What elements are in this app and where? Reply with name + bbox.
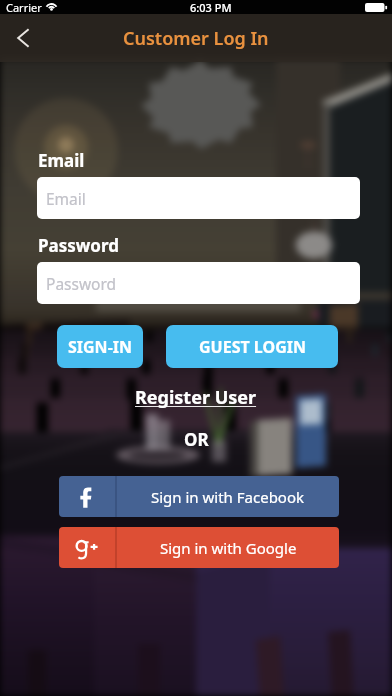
staticText: SIGN-IN — [68, 336, 132, 358]
button[interactable]: Sign in with Facebook — [59, 476, 339, 517]
button[interactable]: Sign in with Google — [59, 527, 339, 568]
button[interactable]: Register User — [135, 385, 257, 410]
button[interactable]: Back — [0, 14, 46, 62]
staticText: Email — [46, 188, 86, 209]
staticText: Email — [38, 149, 85, 172]
staticText: 6:03 PM — [190, 0, 232, 14]
staticText: Password — [46, 273, 117, 294]
staticText: Carrier — [6, 0, 42, 14]
staticText: OR — [184, 428, 209, 451]
button[interactable]: SIGN-IN — [57, 325, 143, 368]
button[interactable]: Email — [37, 177, 360, 219]
staticText: Customer Log In — [123, 26, 269, 51]
staticText: Password — [38, 234, 119, 257]
button[interactable]: GUEST LOGIN — [166, 325, 338, 368]
staticText: Sign in with Facebook — [151, 487, 305, 507]
button[interactable]: Password — [37, 262, 360, 304]
staticText: Sign in with Google — [160, 538, 297, 558]
staticText: GUEST LOGIN — [199, 336, 306, 358]
